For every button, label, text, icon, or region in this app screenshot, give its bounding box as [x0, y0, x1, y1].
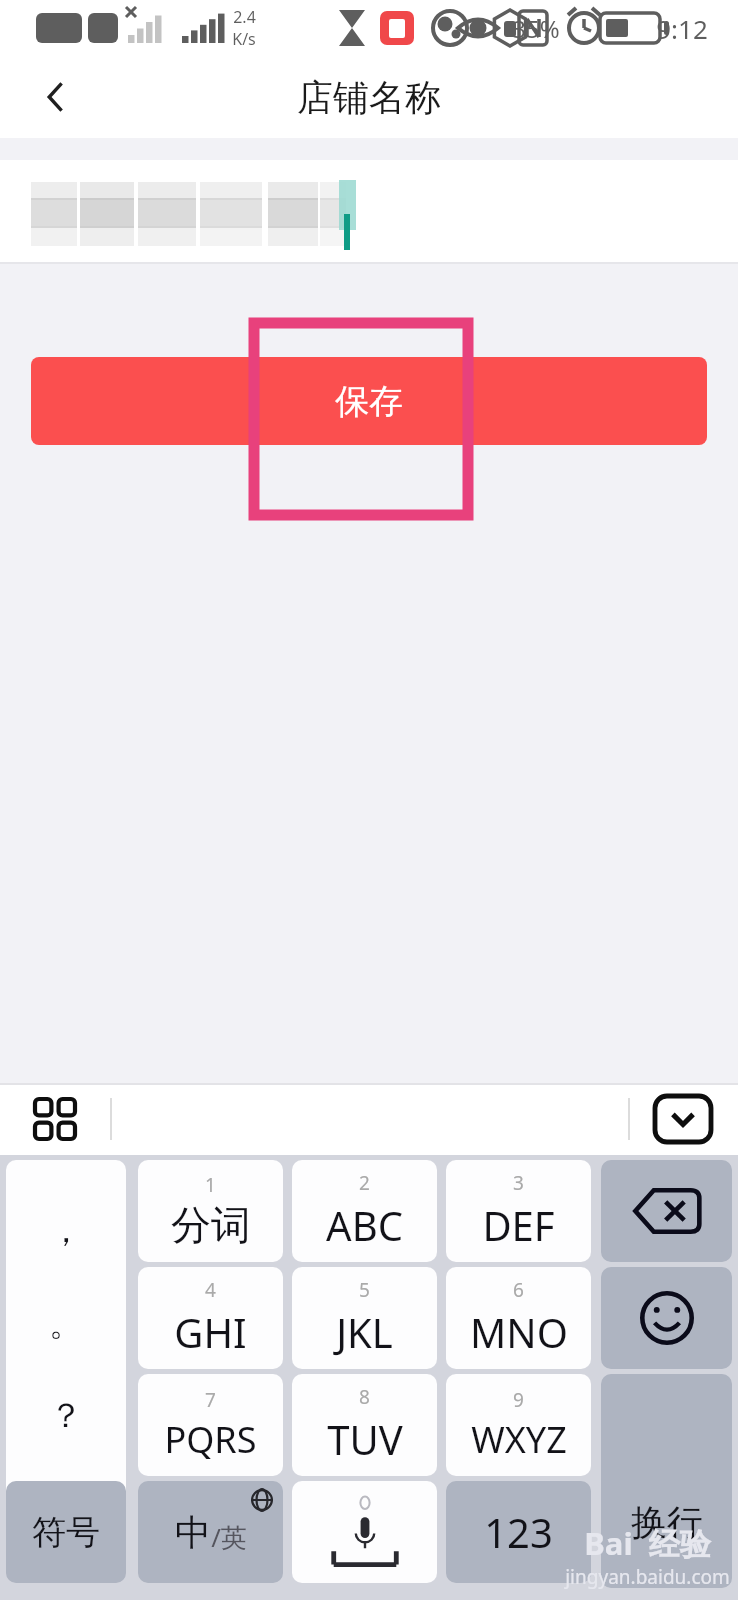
staticText: GHI: [174, 1305, 247, 1359]
staticText: 3: [513, 1170, 524, 1196]
staticText: /英: [211, 1519, 247, 1555]
button[interactable]: Emoji: [601, 1267, 732, 1369]
button[interactable]: 1: [138, 1160, 283, 1262]
staticText: 123: [484, 1505, 553, 1559]
button[interactable]: Hide keyboard: [652, 1088, 714, 1150]
staticText: 。: [49, 1302, 83, 1345]
button[interactable]: Space and voice input: [292, 1481, 437, 1583]
staticText: 4: [205, 1277, 216, 1303]
staticText: ，: [49, 1209, 83, 1252]
button[interactable]: Back: [18, 59, 94, 135]
staticText: K/s: [232, 28, 256, 50]
staticText: 5: [359, 1277, 370, 1303]
button[interactable]: 符号: [6, 1481, 126, 1583]
staticText: 换行: [631, 1500, 703, 1545]
button[interactable]: 保存: [31, 357, 707, 445]
staticText: WXYZ: [471, 1415, 567, 1464]
button[interactable]: Backspace: [601, 1160, 732, 1262]
staticText: TUV: [327, 1412, 403, 1466]
staticText: Bai 经验: [584, 1522, 711, 1564]
staticText: 7: [205, 1387, 216, 1413]
button[interactable]: 123: [446, 1481, 591, 1583]
staticText: 保存: [335, 380, 403, 423]
staticText: ！: [49, 1487, 83, 1530]
staticText: 1: [205, 1172, 216, 1198]
staticText: 35%: [512, 12, 560, 45]
staticText: 9: [513, 1387, 524, 1413]
button[interactable]: Keyboard menu: [24, 1088, 86, 1150]
staticText: 中: [175, 1510, 211, 1555]
button[interactable]: 5: [292, 1267, 437, 1369]
button[interactable]: 中: [138, 1481, 283, 1583]
staticText: ？: [49, 1394, 83, 1437]
staticText: 9:12: [656, 11, 708, 46]
button[interactable]: 3: [446, 1160, 591, 1262]
button[interactable]: 9: [446, 1374, 591, 1476]
button[interactable]: 换行: [601, 1374, 732, 1588]
staticText: ABC: [326, 1198, 403, 1252]
button[interactable]: 6: [446, 1267, 591, 1369]
button[interactable]: ，: [6, 1160, 126, 1579]
staticText: 符号: [32, 1511, 100, 1554]
staticText: PQRS: [164, 1415, 257, 1464]
button[interactable]: 7: [138, 1374, 283, 1476]
staticText: MNO: [470, 1305, 568, 1359]
button[interactable]: 2: [292, 1160, 437, 1262]
button[interactable]: 4: [138, 1267, 283, 1369]
staticText: 2: [359, 1170, 370, 1196]
button[interactable]: [0, 160, 738, 264]
staticText: 6: [513, 1277, 524, 1303]
staticText: DEF: [482, 1198, 555, 1252]
staticText: 2.4: [233, 6, 256, 28]
button[interactable]: 8: [292, 1374, 437, 1476]
staticText: JKL: [336, 1305, 393, 1359]
staticText: 店铺名称: [297, 75, 441, 120]
staticText: 8: [359, 1384, 370, 1410]
staticText: 分词: [171, 1200, 251, 1250]
staticText: jingyan.baidu.com: [565, 1564, 730, 1590]
